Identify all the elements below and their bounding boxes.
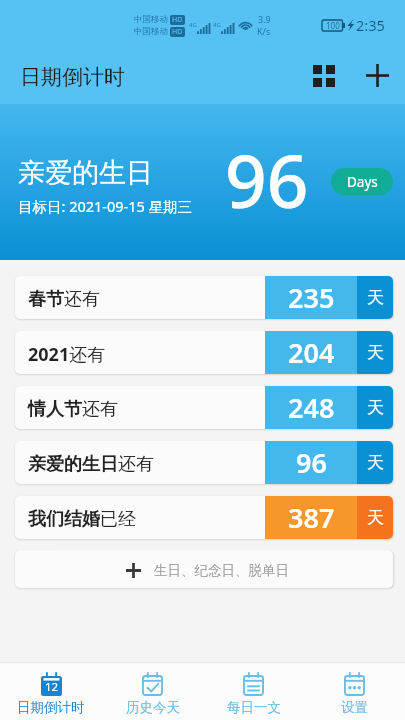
staticText: HD — [172, 15, 183, 25]
staticText: 4G — [189, 21, 197, 29]
staticText: 历史今天 — [126, 699, 180, 716]
staticText: 100 — [326, 20, 340, 31]
staticText: 12 — [45, 679, 59, 695]
button[interactable]: 生日、纪念日、脱单日 — [15, 550, 393, 588]
staticText: 248 — [288, 389, 335, 426]
staticText: 中国移动 — [134, 26, 168, 37]
staticText: 设置 — [341, 699, 368, 716]
staticText: 日期倒计时 — [20, 64, 125, 90]
staticText: 天 — [367, 342, 384, 363]
staticText: 我们结婚已经 — [28, 508, 136, 531]
staticText: 生日、纪念日、脱单日 — [154, 562, 289, 579]
staticText: 3.9 — [258, 13, 271, 25]
staticText: 日期倒计时 — [17, 699, 85, 716]
button[interactable]: 我们结婚已经 — [15, 496, 393, 539]
staticText: 天 — [367, 507, 384, 528]
staticText: 春节还有 — [28, 288, 100, 311]
staticText: K/s — [257, 25, 271, 37]
staticText: 2021还有 — [28, 342, 106, 367]
button[interactable]: Days — [331, 168, 393, 195]
button[interactable]: 每日一文 — [203, 663, 304, 720]
staticText: 中国移动 — [134, 14, 168, 25]
staticText: 天 — [367, 287, 384, 308]
button[interactable]: 春节还有 — [15, 276, 393, 319]
staticText: 96 — [296, 444, 327, 481]
button[interactable]: 2021还有 — [15, 331, 393, 374]
staticText: 天 — [367, 452, 384, 473]
staticText: 387 — [288, 499, 335, 536]
staticText: 2:35 — [356, 15, 385, 35]
button[interactable]: 历史今天 — [102, 663, 203, 720]
staticText: 96 — [225, 130, 309, 229]
button[interactable]: 12 — [0, 663, 102, 720]
staticText: 亲爱的生日 — [18, 156, 153, 190]
staticText: 204 — [288, 334, 335, 371]
staticText: HD — [172, 27, 183, 37]
staticText: Days — [347, 173, 378, 191]
button[interactable]: Grid view — [301, 53, 346, 98]
button[interactable]: 设置 — [304, 663, 405, 720]
staticText: 每日一文 — [227, 699, 281, 716]
staticText: 目标日: 2021-09-15 星期三 — [18, 196, 193, 216]
button[interactable]: Add countdown — [355, 53, 400, 98]
staticText: 情人节还有 — [28, 398, 118, 421]
staticText: 4G — [213, 21, 221, 29]
button[interactable]: 情人节还有 — [15, 386, 393, 429]
staticText: 235 — [288, 279, 335, 316]
staticText: 天 — [367, 397, 384, 418]
button[interactable]: 亲爱的生日还有 — [15, 441, 393, 484]
staticText: 亲爱的生日还有 — [28, 453, 154, 476]
button[interactable]: 亲爱的生日 — [0, 104, 405, 260]
